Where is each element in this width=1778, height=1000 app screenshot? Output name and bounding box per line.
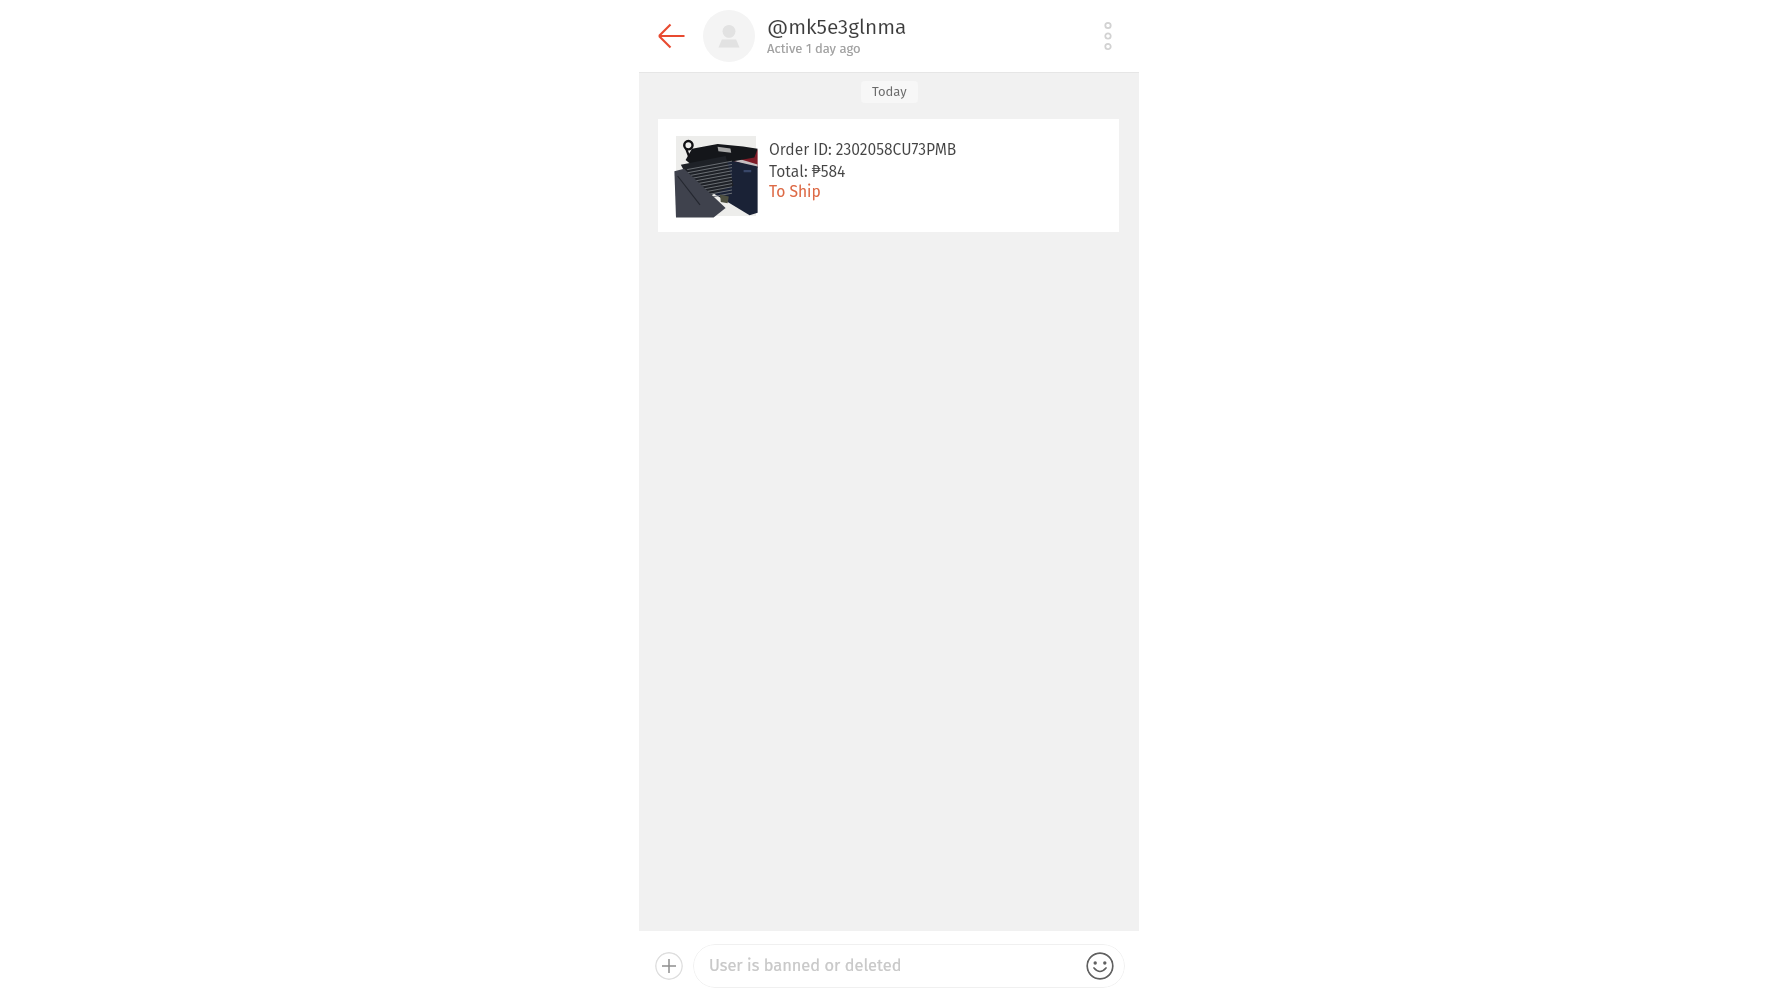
staticText: Total: ₱584 — [769, 160, 846, 181]
staticText: Today — [872, 84, 907, 100]
button[interactable]: Add attachment — [655, 952, 683, 980]
button[interactable]: Emoji — [1086, 952, 1114, 980]
button[interactable]: More options — [1088, 16, 1128, 56]
button[interactable]: Profile picture — [703, 10, 755, 62]
button[interactable]: Order ID: 2302058CU73PMB — [658, 119, 1119, 232]
staticText: Active 1 day ago — [767, 41, 861, 57]
staticText: @mk5e3glnma — [767, 15, 907, 40]
staticText: User is banned or deleted — [709, 956, 902, 976]
staticText: To Ship — [769, 182, 821, 201]
button[interactable]: Back — [650, 14, 694, 58]
button[interactable]: User is banned or deleted — [693, 944, 1125, 988]
button[interactable]: Today — [861, 81, 918, 103]
staticText: Order ID: 2302058CU73PMB — [769, 140, 957, 159]
